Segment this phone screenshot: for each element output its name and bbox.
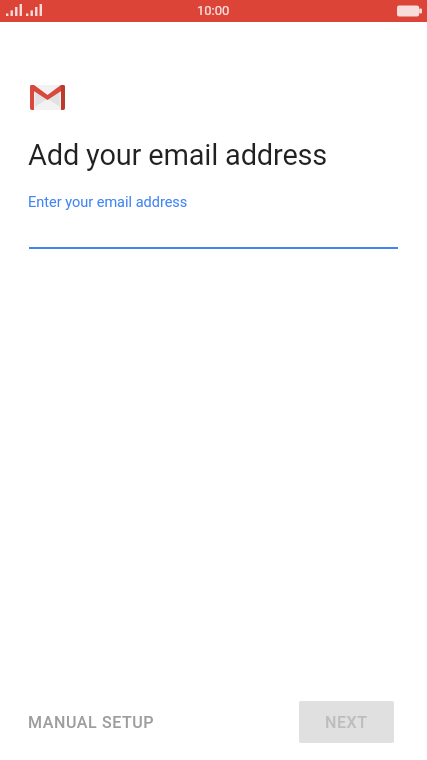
staticText: Add your email address xyxy=(28,138,328,172)
staticText: Enter your email address xyxy=(28,194,188,211)
other: Gmail xyxy=(30,85,65,110)
staticText: MANUAL SETUP xyxy=(28,713,155,732)
staticText: NEXT xyxy=(325,713,368,732)
staticText: 10:00 xyxy=(197,3,230,18)
button[interactable]: Email address input field xyxy=(29,188,398,249)
button[interactable]: MANUAL SETUP xyxy=(16,704,167,741)
button[interactable]: NEXT xyxy=(299,701,394,743)
